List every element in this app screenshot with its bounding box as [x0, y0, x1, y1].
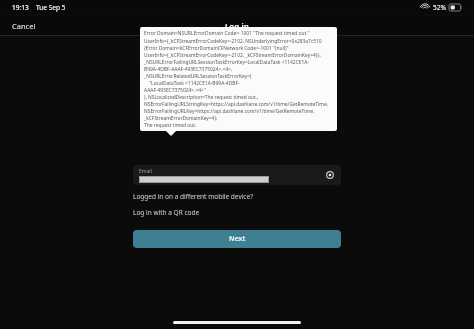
staticText: Logged in on a different mobile device?: [133, 192, 253, 201]
staticText: Tue Sep 5: [36, 3, 66, 12]
staticText: Next: [229, 234, 246, 244]
button[interactable]: Email: [133, 165, 341, 185]
staticText: Error Domain=NSURLErrorDomain Code=-1001…: [144, 30, 333, 128]
button[interactable]: Log in with a QR code: [133, 207, 200, 218]
staticText: 52%: [433, 3, 446, 12]
staticText: Log in: [225, 21, 249, 32]
button[interactable]: Next: [133, 230, 341, 248]
button[interactable]: Clear email: [325, 170, 335, 180]
staticText: Cancel: [12, 21, 36, 31]
button[interactable]: Error Domain=NSURLErrorDomain Code=-1001…: [140, 27, 337, 131]
staticText: 19:13: [12, 3, 29, 12]
staticText: Log in with a QR code: [133, 208, 200, 217]
button[interactable]: Cancel: [6, 18, 42, 34]
button[interactable]: Logged in on a different mobile device?: [133, 191, 253, 202]
staticText: Email: [139, 168, 152, 175]
